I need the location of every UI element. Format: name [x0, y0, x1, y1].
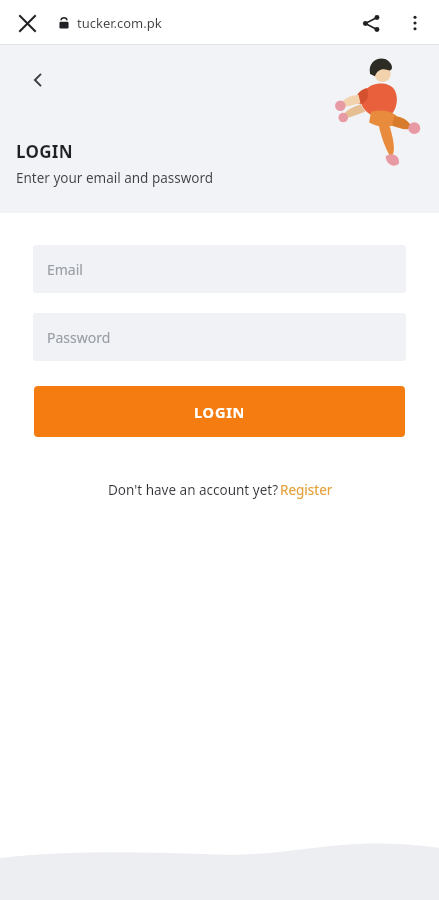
staticText: Enter your email and password — [16, 169, 214, 187]
button[interactable]: Email — [33, 245, 406, 293]
button[interactable]: More options — [395, 3, 435, 43]
button[interactable]: Register — [280, 481, 333, 499]
button[interactable]: Back — [18, 60, 58, 100]
button[interactable]: Close — [8, 4, 46, 42]
staticText: Email — [47, 260, 83, 279]
button[interactable]: Password — [33, 313, 406, 361]
button[interactable]: Share — [351, 3, 391, 43]
staticText: Don't have an account yet? — [106, 481, 280, 499]
staticText: LOGIN — [16, 140, 73, 163]
staticText: tucker.com.pk — [77, 14, 162, 32]
staticText: LOGIN — [194, 402, 246, 422]
staticText: Register — [280, 481, 333, 499]
button[interactable]: LOGIN — [34, 386, 405, 437]
staticText: Password — [47, 328, 111, 347]
